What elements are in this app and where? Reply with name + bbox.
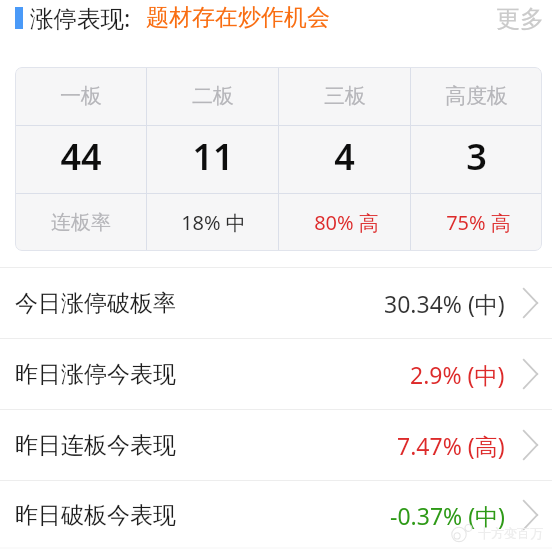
staticText: 3 bbox=[466, 132, 487, 181]
staticText: 昨日连板今表现 bbox=[15, 431, 176, 460]
staticText: 75% 高 bbox=[446, 209, 511, 236]
staticText: 涨停表现: bbox=[30, 2, 131, 34]
button[interactable]: 昨日涨停今表现 bbox=[0, 339, 552, 409]
staticText: 18% 中 bbox=[181, 209, 246, 236]
staticText: 今日涨停破板率 bbox=[15, 289, 176, 318]
staticText: 44 bbox=[60, 132, 102, 181]
staticText: 4 bbox=[334, 132, 355, 181]
button[interactable]: 今日涨停破板率 bbox=[0, 268, 552, 338]
staticText: 三板 bbox=[324, 83, 366, 109]
button[interactable]: 昨日连板今表现 bbox=[0, 410, 552, 480]
staticText: 11 bbox=[192, 132, 234, 181]
staticText: 2.9% (中) bbox=[410, 359, 505, 390]
staticText: 80% 高 bbox=[314, 209, 379, 236]
staticText: 连板率 bbox=[51, 210, 111, 235]
staticText: 十方变百万 bbox=[478, 525, 543, 541]
staticText: 30.34% (中) bbox=[384, 288, 505, 319]
staticText: 7.47% (高) bbox=[397, 430, 505, 461]
button[interactable]: 昨日破板今表现 bbox=[0, 481, 552, 549]
staticText: 题材存在炒作机会 bbox=[146, 3, 330, 32]
staticText: -0.37% (中) bbox=[390, 500, 505, 531]
staticText: 一板 bbox=[60, 83, 102, 109]
staticText: 更多 bbox=[496, 4, 544, 31]
button[interactable]: 更多 bbox=[492, 0, 548, 35]
staticText: 昨日涨停今表现 bbox=[15, 360, 176, 389]
staticText: 二板 bbox=[192, 83, 234, 109]
staticText: 昨日破板今表现 bbox=[15, 501, 176, 530]
staticText: 高度板 bbox=[445, 83, 508, 109]
